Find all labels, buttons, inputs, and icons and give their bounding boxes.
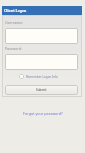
staticText: Remember Logon Info [26, 75, 58, 79]
button[interactable]: Client Logon [2, 6, 82, 15]
staticText: Client Logon [4, 8, 27, 13]
button[interactable]: Forgot your password? [23, 111, 63, 116]
staticText: Username: [5, 20, 23, 25]
button[interactable]: Submit [5, 85, 78, 95]
button[interactable] [5, 28, 78, 44]
button[interactable] [5, 54, 78, 70]
staticText: Password: [5, 46, 22, 51]
button[interactable]: Remember Logon Info [19, 74, 58, 79]
staticText: Submit [36, 88, 47, 92]
